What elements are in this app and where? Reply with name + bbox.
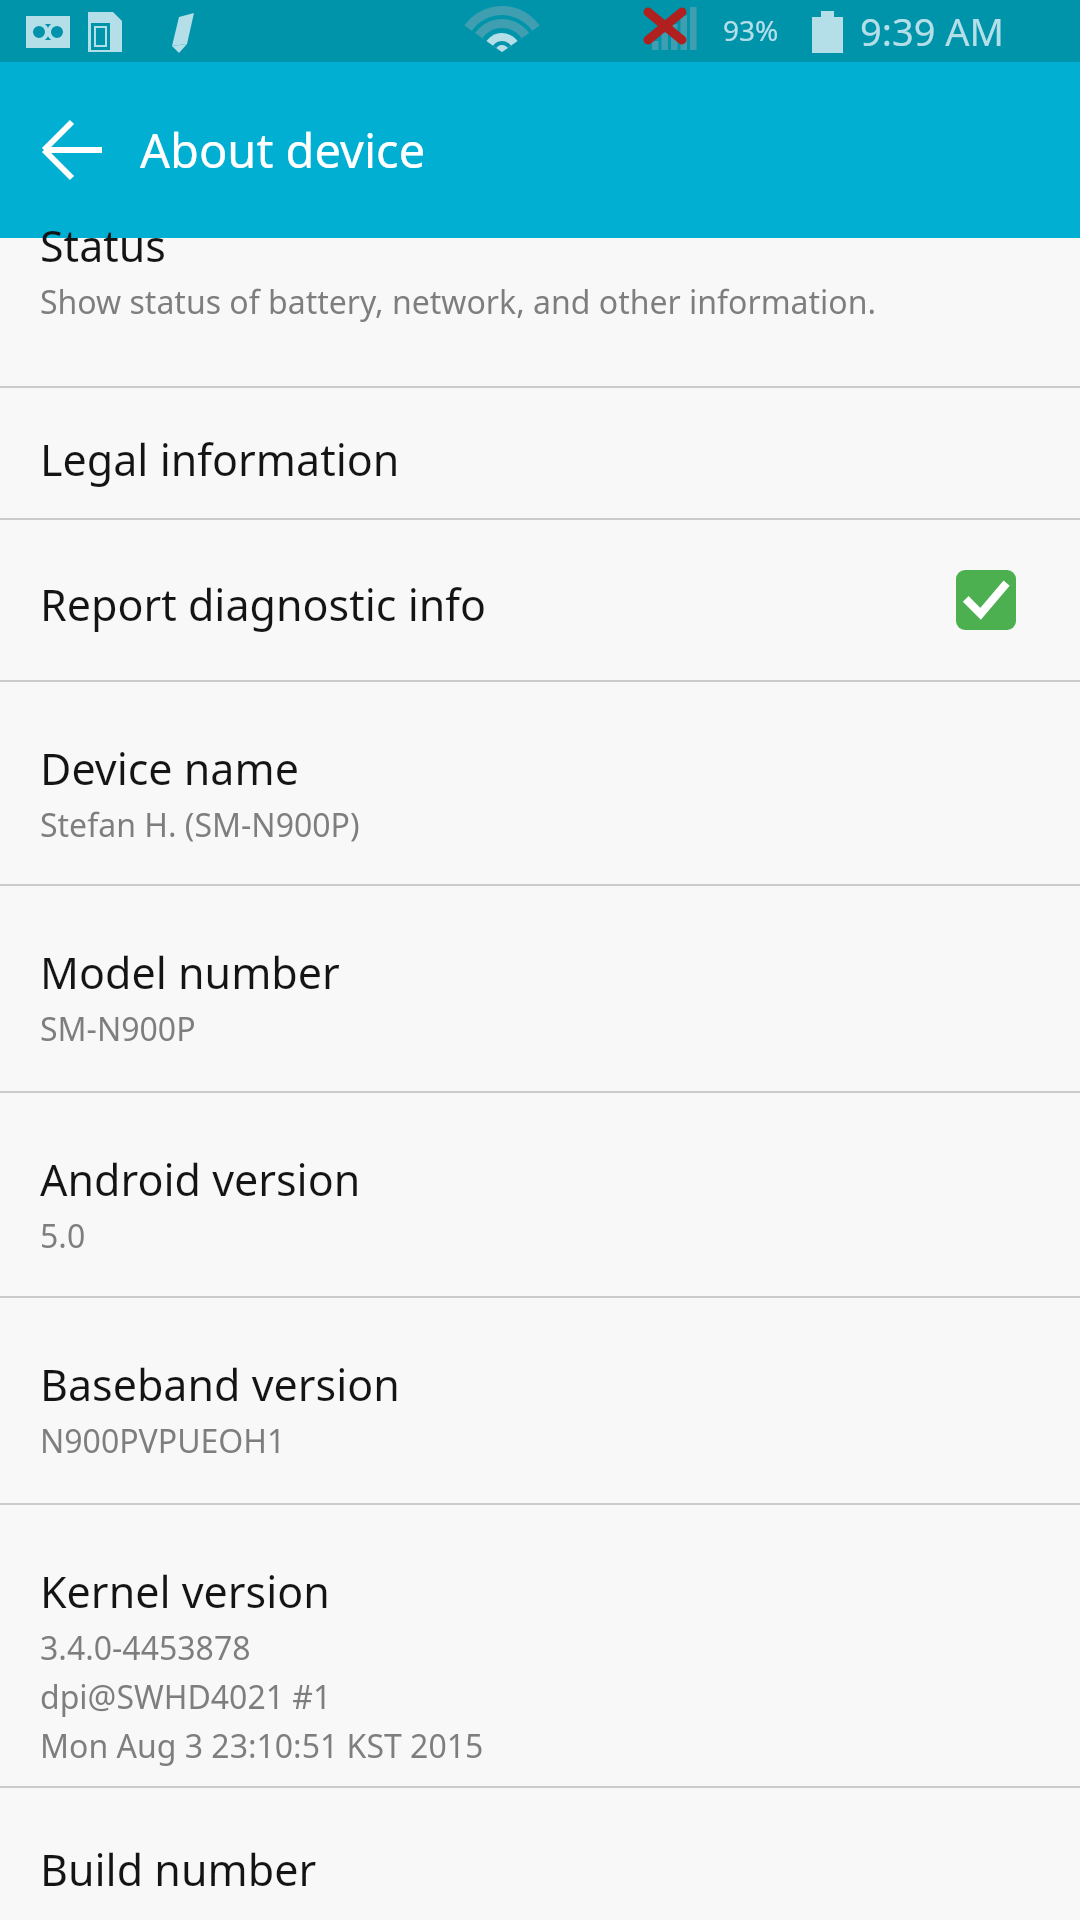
staticText: Show status of battery, network, and oth… bbox=[40, 280, 877, 324]
staticText: Kernel version bbox=[40, 1562, 330, 1621]
button[interactable]: Report diagnostic info bbox=[0, 520, 1080, 680]
button[interactable]: Build number bbox=[0, 1788, 1080, 1908]
staticText: About device bbox=[140, 118, 426, 182]
button[interactable]: Status bbox=[0, 238, 1080, 386]
button[interactable]: Report diagnostic info toggle bbox=[956, 570, 1016, 630]
button[interactable]: Model number bbox=[0, 886, 1080, 1091]
staticText: Stefan H. (SM-N900P) bbox=[40, 803, 360, 847]
staticText: Status bbox=[40, 216, 166, 275]
staticText: 93% bbox=[723, 11, 779, 49]
staticText: N900PVPUEOH1 bbox=[40, 1419, 286, 1463]
staticText: Report diagnostic info bbox=[40, 575, 487, 634]
button[interactable]: Legal information bbox=[0, 388, 1080, 518]
button[interactable]: Device name bbox=[0, 682, 1080, 884]
button[interactable]: Kernel version bbox=[0, 1505, 1080, 1786]
button[interactable]: Android version bbox=[0, 1093, 1080, 1296]
staticText: Legal information bbox=[40, 430, 400, 489]
button[interactable]: Navigate up bbox=[26, 106, 114, 194]
staticText: Mon Aug 3 23:10:51 KST 2015 bbox=[40, 1724, 484, 1768]
staticText: 9:39 AM bbox=[860, 5, 1005, 57]
staticText: Model number bbox=[40, 943, 340, 1002]
staticText: Build number bbox=[40, 1840, 317, 1899]
staticText: Android version bbox=[40, 1150, 361, 1209]
staticText: Baseband version bbox=[40, 1355, 400, 1414]
staticText: 3.4.0-4453878 bbox=[40, 1626, 251, 1670]
staticText: SM-N900P bbox=[40, 1007, 196, 1051]
button[interactable]: Baseband version bbox=[0, 1298, 1080, 1503]
staticText: dpi@SWHD4021 #1 bbox=[40, 1675, 332, 1719]
staticText: Device name bbox=[40, 739, 299, 798]
staticText: 5.0 bbox=[40, 1214, 86, 1258]
